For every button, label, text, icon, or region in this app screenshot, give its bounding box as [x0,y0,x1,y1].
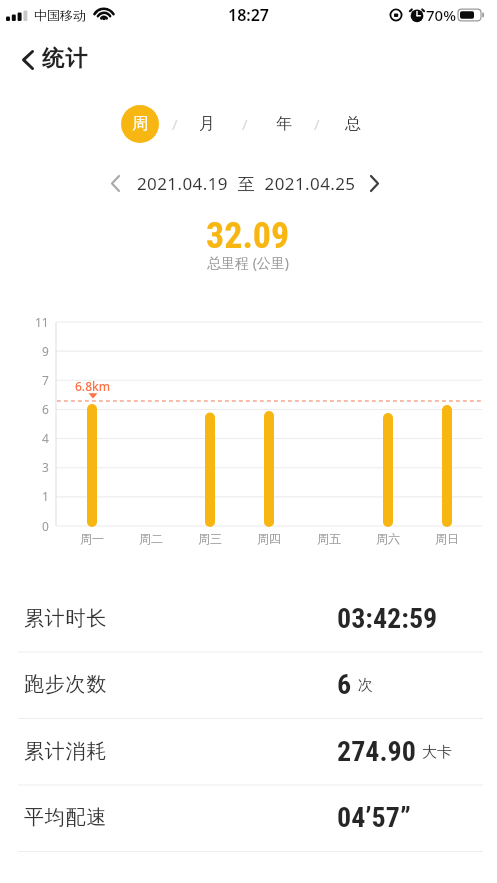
button[interactable]: 周 [121,105,159,143]
staticText: 04’57” [337,801,411,834]
staticText: 2021.04.19 至 2021.04.25 [137,172,356,195]
button[interactable] [100,167,132,199]
staticText: 月 [199,114,215,134]
staticText: / [242,114,248,134]
staticText: 7 [42,372,49,388]
staticText: 总 [345,114,361,134]
staticText: 年 [276,114,292,134]
staticText: 周三 [198,531,222,546]
staticText: 70% [426,5,456,25]
staticText: 6.8km [75,378,111,394]
staticText: 周六 [376,531,400,546]
button[interactable] [18,784,483,850]
button[interactable] [10,42,120,78]
button[interactable] [360,167,392,199]
button[interactable]: 总 [335,106,371,142]
staticText: 周四 [257,531,281,546]
staticText: 274.90 [337,735,416,768]
staticText: 累计时长 [24,606,108,631]
staticText: 03:42:59 [337,602,438,635]
staticText: 大卡 [422,743,452,762]
button[interactable] [18,585,483,651]
button[interactable] [18,651,483,717]
staticText: / [172,114,178,134]
staticText: 0 [42,518,49,534]
staticText: 周二 [139,531,163,546]
staticText: 中国移动 [34,7,86,23]
staticText: 统计 [42,45,89,73]
button[interactable] [18,718,483,784]
staticText: 周日 [435,531,459,546]
staticText: 32.09 [206,215,290,257]
staticText: / [314,114,320,134]
staticText: 次 [358,676,373,695]
button[interactable]: 年 [266,106,302,142]
staticText: 周一 [80,531,104,546]
staticText: 9 [42,343,49,359]
staticText: 周 [132,114,148,134]
staticText: 6 [337,668,352,701]
staticText: 3 [42,459,49,475]
staticText: 平均配速 [24,805,108,830]
staticText: 11 [35,314,49,330]
staticText: 周五 [317,531,341,546]
staticText: 6 [42,401,49,417]
staticText: 跑步次数 [24,672,108,697]
staticText: 4 [42,430,49,446]
staticText: 总里程 (公里) [207,253,290,272]
button[interactable]: 月 [189,106,225,142]
staticText: 18:27 [228,4,270,26]
staticText: 1 [42,488,49,504]
staticText: 累计消耗 [24,739,108,764]
